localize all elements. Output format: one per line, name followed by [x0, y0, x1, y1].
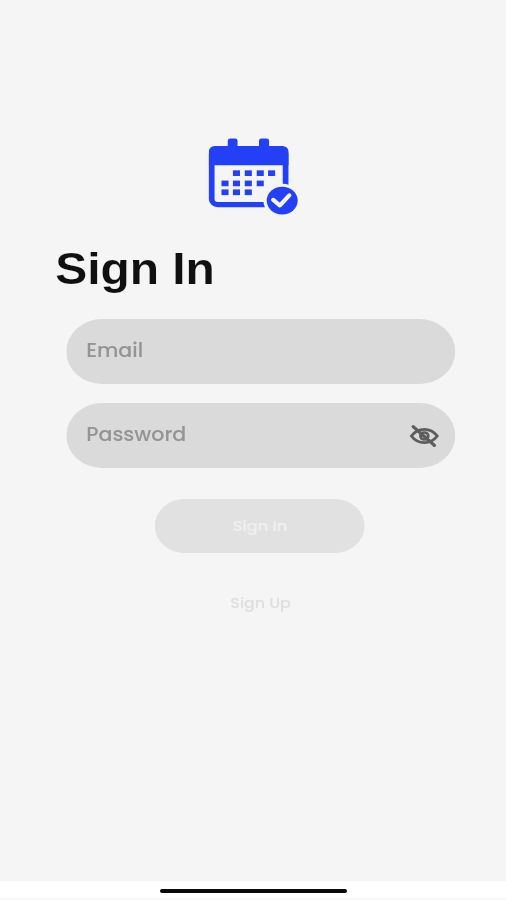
staticText: Sign Up — [230, 594, 291, 613]
button[interactable]: Email — [66, 319, 455, 384]
staticText: Password — [86, 421, 187, 448]
staticText: Sign In — [233, 517, 288, 536]
button[interactable]: Sign In — [155, 499, 365, 553]
button[interactable]: Sign Up — [221, 588, 299, 618]
staticText: Sign In — [55, 244, 215, 293]
button[interactable]: Password — [66, 403, 455, 468]
button[interactable]: Show password — [410, 423, 439, 449]
staticText: Email — [86, 337, 144, 364]
